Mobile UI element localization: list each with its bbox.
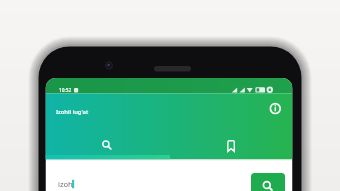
button[interactable]: Izohli lug'at [56, 108, 89, 116]
staticText: 10:52 [59, 87, 72, 94]
button[interactable] [45, 128, 169, 158]
button[interactable] [251, 173, 285, 191]
button[interactable] [169, 128, 292, 158]
button[interactable]: izoh [58, 179, 73, 189]
staticText: izoh [58, 179, 73, 189]
staticText: Izohli lug'at [56, 108, 89, 116]
button[interactable] [266, 99, 285, 118]
